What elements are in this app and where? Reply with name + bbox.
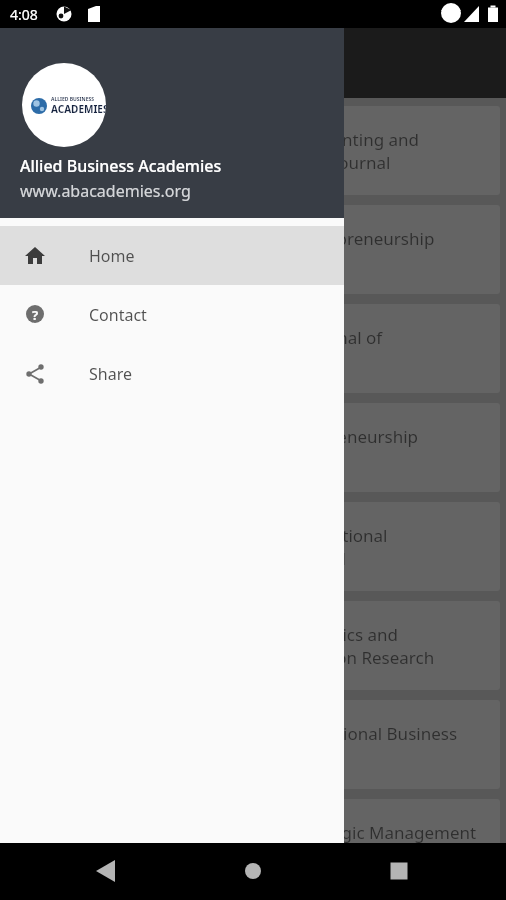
- staticText: ALLIED BUSINESS: [51, 96, 94, 103]
- button[interactable]: Journal of Entrepreneurship: [6, 403, 500, 492]
- button[interactable]: ?: [0, 285, 344, 344]
- staticText: ?: [32, 306, 39, 324]
- button[interactable]: Recent apps: [377, 849, 421, 893]
- button[interactable]: International Journal of: [6, 304, 500, 393]
- button[interactable]: Academy of Strategic Management: [6, 799, 500, 888]
- staticText: 4:08: [10, 5, 38, 24]
- staticText: Academy of Entrepreneurship: [196, 227, 435, 250]
- staticText: Academy of Accounting and: [196, 128, 420, 151]
- staticText: ACADEMIES: [51, 102, 106, 116]
- staticText: Academy of Strategic Management: [196, 821, 477, 844]
- staticText: Journal: [196, 844, 253, 867]
- button[interactable]: Share: [0, 344, 344, 403]
- button[interactable]: Home: [0, 226, 344, 285]
- staticText: Journal of Entrepreneurship: [196, 425, 419, 448]
- button[interactable]: Academy of Entrepreneurship: [6, 205, 500, 294]
- button[interactable]: Back: [85, 849, 129, 893]
- staticText: International Journal of: [196, 326, 383, 349]
- staticText: www.abacademies.org: [20, 180, 191, 202]
- staticText: Share: [89, 363, 132, 385]
- staticText: Academy of Educational: [196, 524, 388, 547]
- staticText: Leadership Journal: [196, 547, 346, 570]
- staticText: Allied Business Academies: [20, 155, 222, 177]
- button[interactable]: Journal of Economics and: [6, 601, 500, 690]
- staticText: Contact: [89, 304, 147, 326]
- button[interactable]: Academy of Accounting and: [6, 106, 500, 195]
- staticText: Economic Education Research: [196, 646, 435, 669]
- button[interactable]: Home: [231, 849, 275, 893]
- staticText: Home: [89, 245, 135, 267]
- staticText: Financial Studies Journal: [196, 151, 391, 174]
- button[interactable]: Journal of International Business: [6, 700, 500, 789]
- staticText: Journal of International Business: [196, 722, 458, 745]
- button[interactable]: Academy of Educational: [6, 502, 500, 591]
- staticText: Journal of Economics and: [196, 623, 399, 646]
